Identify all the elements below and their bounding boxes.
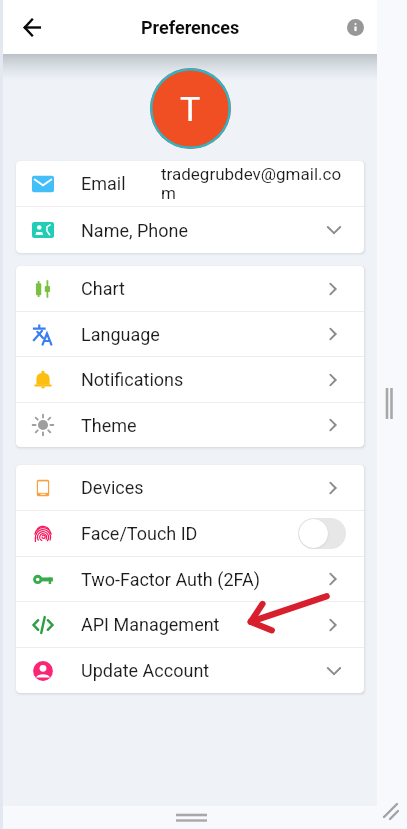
staticText: Preferences [141, 17, 240, 38]
button[interactable]: Theme [16, 403, 364, 447]
button[interactable]: Chart [16, 266, 364, 311]
staticText: tradegrubdev@gmail.com [161, 164, 342, 203]
button[interactable]: Notifications [16, 357, 364, 402]
staticText: T [180, 89, 201, 129]
button[interactable]: Two-Factor Auth (2FA) [16, 557, 364, 601]
staticText: Devices [81, 477, 144, 498]
staticText: Language [81, 324, 160, 345]
button[interactable]: Devices [16, 465, 364, 510]
button[interactable]: API Management [16, 602, 364, 647]
staticText: Notifications [81, 369, 184, 390]
staticText: Update Account [81, 660, 210, 681]
button[interactable]: Face/Touch ID toggle [298, 518, 346, 549]
button[interactable]: Email [16, 161, 364, 206]
staticText: Chart [81, 278, 125, 299]
staticText: Face/Touch ID [81, 523, 198, 544]
staticText: Two-Factor Auth (2FA) [81, 569, 260, 590]
button[interactable]: Back [14, 9, 50, 45]
staticText: Name, Phone [81, 220, 188, 241]
button[interactable]: Update Account [16, 648, 364, 693]
staticText: Theme [81, 415, 137, 436]
staticText: API Management [81, 614, 220, 635]
staticText: Email [81, 173, 126, 194]
button[interactable]: Name, Phone [16, 207, 364, 253]
button[interactable]: Info [341, 13, 369, 41]
button[interactable]: Face/Touch ID [16, 511, 364, 556]
button[interactable]: Language [16, 312, 364, 356]
